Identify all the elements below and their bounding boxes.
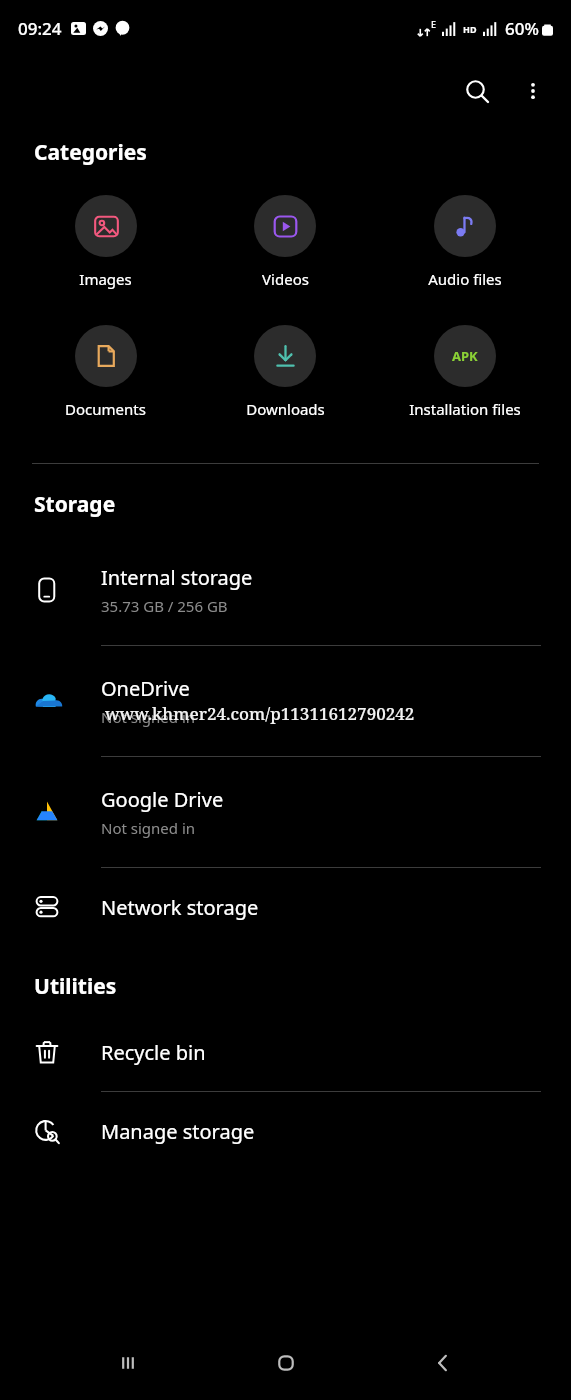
staticText: Recycle bin xyxy=(101,1039,206,1066)
staticText: Categories xyxy=(34,138,147,167)
staticText: Not signed in xyxy=(101,707,196,727)
button[interactable]: Documents xyxy=(16,321,195,423)
staticText: Internal storage xyxy=(101,564,253,591)
staticText: www.khmer24.com/p11311612790242 xyxy=(105,702,415,725)
button[interactable]: Manage storage xyxy=(0,1092,571,1170)
button[interactable]: Google Drive xyxy=(0,757,571,868)
button[interactable]: Search xyxy=(453,67,501,115)
button[interactable]: More options xyxy=(509,67,557,115)
button[interactable]: OneDrive xyxy=(0,646,571,757)
staticText: E xyxy=(431,18,437,30)
staticText: Audio files xyxy=(428,269,502,289)
staticText: Videos xyxy=(262,269,309,289)
staticText: Utilities xyxy=(34,972,117,1001)
staticText: Not signed in xyxy=(101,818,196,838)
staticText: Installation files xyxy=(409,399,521,419)
button[interactable]: Home xyxy=(256,1333,316,1393)
staticText: APK xyxy=(452,347,478,365)
staticText: Images xyxy=(79,269,132,289)
staticText: Network storage xyxy=(101,894,259,921)
staticText: 09:24 xyxy=(18,17,62,40)
staticText: HD xyxy=(463,23,477,35)
button[interactable]: APK xyxy=(375,321,555,423)
button[interactable]: Audio files xyxy=(375,191,555,293)
staticText: Google Drive xyxy=(101,786,224,813)
button[interactable]: Network storage xyxy=(0,868,571,946)
staticText: Manage storage xyxy=(101,1118,255,1145)
button[interactable]: Videos xyxy=(195,191,375,293)
button[interactable]: Back xyxy=(413,1333,473,1393)
button[interactable]: Recent apps xyxy=(98,1333,158,1393)
button[interactable]: Internal storage xyxy=(0,535,571,646)
button[interactable]: Recycle bin xyxy=(0,1013,571,1092)
staticText: Storage xyxy=(34,490,116,519)
staticText: 35.73 GB / 256 GB xyxy=(101,596,228,616)
button[interactable]: Images xyxy=(16,191,195,293)
staticText: OneDrive xyxy=(101,675,190,702)
staticText: 60% xyxy=(505,17,539,40)
staticText: Downloads xyxy=(246,399,325,419)
button[interactable]: Downloads xyxy=(195,321,375,423)
staticText: Documents xyxy=(65,399,146,419)
